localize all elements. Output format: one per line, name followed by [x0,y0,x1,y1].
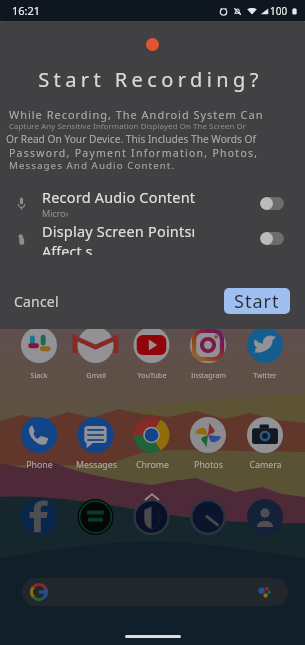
staticText: Gmail [86,370,106,380]
staticText: Phone [26,459,53,470]
button[interactable]: Cancel [14,287,66,315]
button[interactable]: Photos [180,459,236,470]
staticText: Photos [194,459,223,470]
staticText: Start [234,289,280,314]
staticText: Camera [249,459,282,470]
button[interactable]: Search [22,578,288,606]
staticText: Or Read On Your Device. This Includes Th… [6,132,257,146]
button[interactable]: Twitter [237,369,293,380]
staticText: Start Recording? [0,66,303,93]
staticText: Messages [76,459,117,470]
button[interactable]: Gmail [68,369,124,380]
staticText: Affect s [42,241,93,255]
staticText: Password, Payment Information, Photos, [9,146,259,160]
button[interactable]: Start [224,288,290,314]
staticText: Cancel [14,292,59,311]
button[interactable]: Camera [237,459,293,470]
staticText: Capture Any Sensitive Information Displa… [9,121,247,132]
staticText: Instagram [191,370,226,380]
staticText: Messages And Audio Content. [9,159,176,172]
staticText: While Recording, The Android System Can [9,107,264,122]
staticText: Display Screen Pointsı [42,221,196,241]
staticText: Record Audio Content [42,187,196,207]
staticText: YouTube [137,370,167,380]
staticText: Chrome [136,459,169,470]
staticText: Twitter [253,370,277,380]
staticText: 100 [270,4,288,18]
button[interactable]: Record Audio Content [0,186,305,220]
button[interactable]: Slack [11,369,67,380]
staticText: Slack [30,370,48,380]
staticText: 16:21 [12,3,41,18]
button[interactable]: Phone [11,459,67,470]
button[interactable]: YouTube [124,369,180,380]
button[interactable]: Instagram [180,369,236,380]
button[interactable]: Messages [68,459,124,470]
button[interactable]: Chrome [124,459,180,470]
staticText: Micro› [42,207,69,219]
button[interactable]: Display Screen Pointsı [0,221,305,255]
